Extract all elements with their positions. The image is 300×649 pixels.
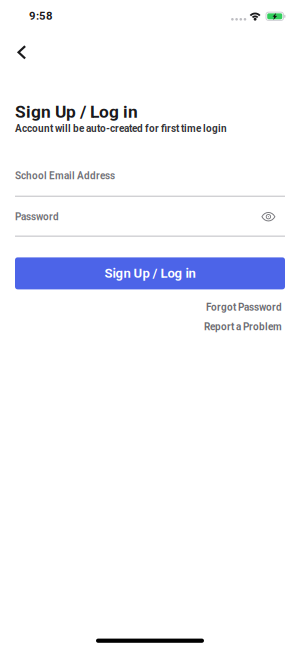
button[interactable]: Forgot Password — [206, 301, 282, 313]
staticText: Password — [15, 211, 59, 222]
button[interactable]: Report a Problem — [204, 321, 282, 333]
staticText: 9:58 — [29, 9, 53, 23]
staticText: School Email Address — [15, 170, 115, 182]
staticText: Account will be auto-created for first t… — [15, 123, 227, 134]
staticText: Report a Problem — [204, 321, 282, 333]
button[interactable]: Show password — [252, 213, 284, 220]
staticText: Forgot Password — [206, 301, 282, 313]
staticText: Sign Up / Log in — [104, 266, 195, 281]
staticText: Sign Up / Log in — [15, 102, 138, 122]
button[interactable]: Back — [0, 36, 40, 67]
button[interactable]: Sign Up / Log in — [15, 257, 285, 289]
